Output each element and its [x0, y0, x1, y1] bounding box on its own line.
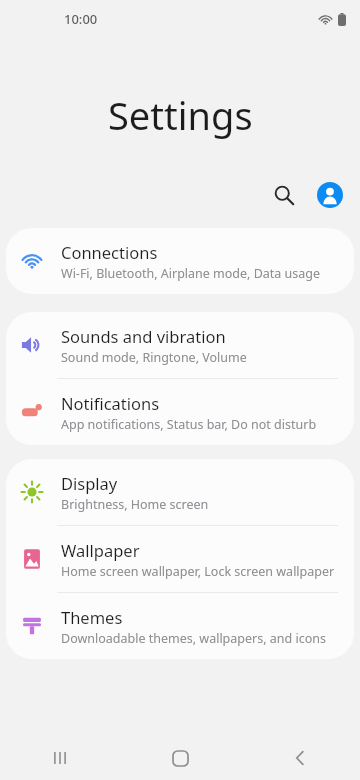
- button[interactable]: Display: [6, 459, 354, 525]
- staticText: Brightness, Home screen: [61, 496, 209, 513]
- button[interactable]: Sounds and vibration: [6, 312, 354, 378]
- staticText: Wi-Fi, Bluetooth, Airplane mode, Data us…: [61, 265, 321, 282]
- button[interactable]: Search: [262, 173, 306, 217]
- staticText: Themes: [61, 606, 123, 628]
- button[interactable]: Connections: [6, 228, 354, 294]
- staticText: Sound mode, Ringtone, Volume: [61, 349, 247, 366]
- button[interactable]: Home: [120, 736, 240, 780]
- button[interactable]: Notifications: [6, 379, 354, 445]
- button[interactable]: Themes: [6, 593, 354, 659]
- staticText: Sounds and vibration: [61, 325, 226, 347]
- staticText: 10:00: [64, 10, 98, 28]
- button[interactable]: Back: [240, 736, 360, 780]
- button[interactable]: Wallpaper: [6, 526, 354, 592]
- staticText: Downloadable themes, wallpapers, and ico…: [61, 630, 326, 647]
- staticText: Wallpaper: [61, 539, 140, 561]
- staticText: Home screen wallpaper, Lock screen wallp…: [61, 563, 335, 580]
- button[interactable]: Profile: [308, 173, 352, 217]
- staticText: Connections: [61, 241, 158, 263]
- button[interactable]: Recents: [0, 736, 120, 780]
- staticText: Display: [61, 472, 118, 494]
- staticText: Notifications: [61, 392, 160, 414]
- staticText: Settings: [108, 89, 253, 141]
- staticText: App notifications, Status bar, Do not di…: [61, 416, 317, 433]
